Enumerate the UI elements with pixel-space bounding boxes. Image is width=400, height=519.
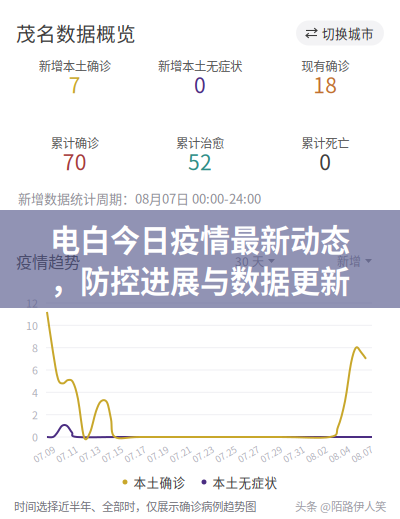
staticText: 07.11 [55,447,78,461]
staticText: 52 [188,146,212,176]
staticText: 30 天 [235,252,264,270]
staticText: 07.09 [32,447,55,461]
staticText: 07.21 [169,447,192,461]
staticText: 累计死亡 [301,133,349,151]
staticText: 70 [63,146,87,176]
staticText: 现有确诊 [301,56,349,74]
staticText: 时间选择近半年、全部时，仅展示确诊病例趋势图 [14,498,256,514]
staticText: 8 [32,340,38,355]
staticText: 18 [313,69,337,99]
staticText: 08.07 [350,447,373,461]
staticText: 7 [69,69,81,99]
staticText: 07.25 [214,447,237,461]
staticText: 07.19 [146,447,169,461]
staticText: 07.31 [282,447,305,461]
staticText: ，防控进展与数据更新 [50,258,350,301]
staticText: 0 [194,69,206,99]
staticText: 疫情趋势 [16,249,80,273]
staticText: 07.13 [78,447,101,461]
staticText: 4 [32,385,38,400]
staticText: 新增本土无症状 [158,56,242,74]
staticText: 切换城市 [322,24,374,42]
staticText: 2 [32,407,38,422]
staticText: 本土无症状 [212,473,277,491]
staticText: 0 [32,429,38,445]
staticText: 电白今日疫情最新动态 [50,217,350,260]
staticText: 头条 @陌路伊人笑 [295,498,386,514]
staticText: 12 [26,295,38,311]
staticText: 07.27 [237,447,260,461]
staticText: 08.04 [328,447,351,461]
staticText: 茂名数据概览 [16,19,136,47]
staticText: 本土确诊 [133,473,185,491]
staticText: 新增 [337,252,361,270]
staticText: 07.23 [191,447,214,461]
staticText: 10 [26,318,38,333]
staticText: 08.02 [305,447,328,461]
staticText: 07.17 [123,447,146,461]
staticText: 新增本土确诊 [39,56,111,74]
staticText: 累计确诊 [51,133,99,151]
staticText: 07.15 [101,447,124,461]
staticText: 07.29 [259,447,282,461]
staticText: 累计治愈 [176,133,224,151]
button[interactable]: 30 天 [235,252,275,270]
button[interactable]: 新增 [337,252,372,270]
staticText: 6 [32,362,38,378]
staticText: 0 [319,146,331,176]
button[interactable]: 切换城市 [296,20,384,45]
staticText: 新增数据统计周期：08月07日 00:00-24:00 [18,188,261,207]
